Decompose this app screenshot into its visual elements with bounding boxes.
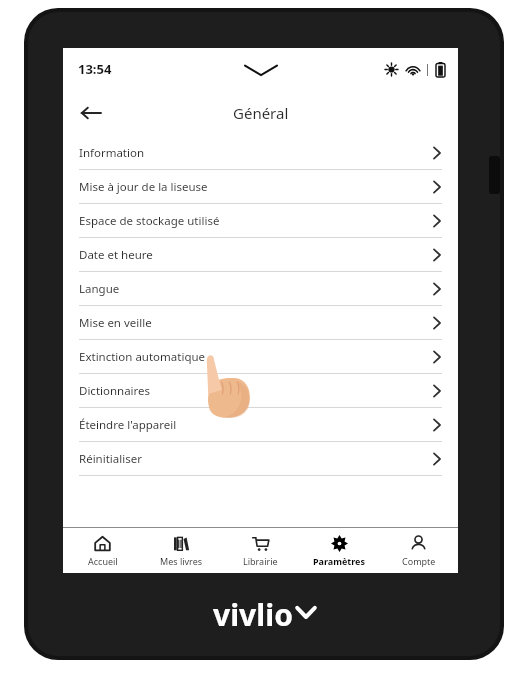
button[interactable]: Espace de stockage utilisé [63,204,458,238]
staticText: vivlio [213,594,293,628]
staticText: Paramètres [313,555,366,567]
button[interactable]: Mes livres [142,528,221,573]
staticText: Dictionnaires [79,383,151,399]
staticText: Extinction automatique [79,349,206,365]
button[interactable]: Extinction automatique [63,340,458,374]
staticText: Espace de stockage utilisé [79,213,220,229]
button[interactable]: Paramètres [300,528,379,573]
button[interactable]: Mise à jour de la liseuse [63,170,458,204]
button[interactable]: Back [73,95,109,131]
staticText: Date et heure [79,247,153,263]
staticText: Information [79,145,145,161]
button[interactable]: Mise en veille [63,306,458,340]
button[interactable]: Accueil [63,528,142,573]
staticText: Mes livres [160,555,203,567]
staticText: Accueil [88,555,118,567]
button[interactable]: Information [63,136,458,170]
staticText: Éteindre l'appareil [79,417,177,433]
button[interactable]: Dictionnaires [63,374,458,408]
button[interactable]: Librairie [221,528,300,573]
staticText: Librairie [243,555,278,567]
staticText: 13:54 [78,60,112,78]
staticText: Général [233,103,289,123]
button[interactable]: Date et heure [63,238,458,272]
staticText: Mise à jour de la liseuse [79,179,208,195]
staticText: Compte [402,555,436,567]
staticText: Langue [79,281,120,297]
button[interactable]: Éteindre l'appareil [63,408,458,442]
button[interactable]: Langue [63,272,458,306]
button[interactable]: Réinitialiser [63,442,458,476]
button[interactable]: Compte [379,528,458,573]
staticText: Mise en veille [79,315,152,331]
staticText: Réinitialiser [79,451,142,467]
